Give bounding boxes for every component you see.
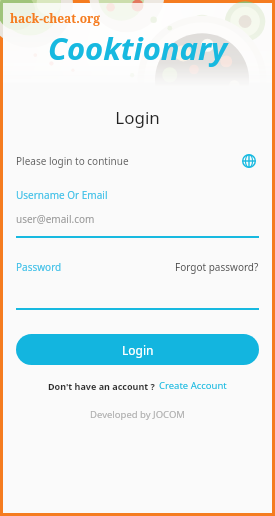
button[interactable]: Change language: [239, 151, 259, 171]
staticText: Cooktionary: [3, 27, 272, 69]
button[interactable]: Login: [16, 334, 259, 365]
button[interactable]: user@email.com: [16, 202, 259, 236]
staticText: Login: [122, 342, 154, 358]
staticText: Forgot password?: [175, 260, 259, 274]
staticText: Username Or Email: [16, 188, 108, 202]
staticText: Don't have an account ?: [48, 380, 155, 392]
staticText: Login: [16, 106, 259, 129]
staticText: Developed by JOCOM: [16, 408, 259, 421]
staticText: hack-cheat.org: [10, 10, 101, 26]
staticText: Create Account: [159, 379, 227, 392]
staticText: Please login to continue: [16, 154, 129, 168]
button[interactable]: Forgot password?: [175, 260, 259, 274]
button[interactable]: Create Account: [159, 379, 227, 392]
staticText: Password: [16, 260, 62, 274]
staticText: user@email.com: [16, 212, 95, 226]
